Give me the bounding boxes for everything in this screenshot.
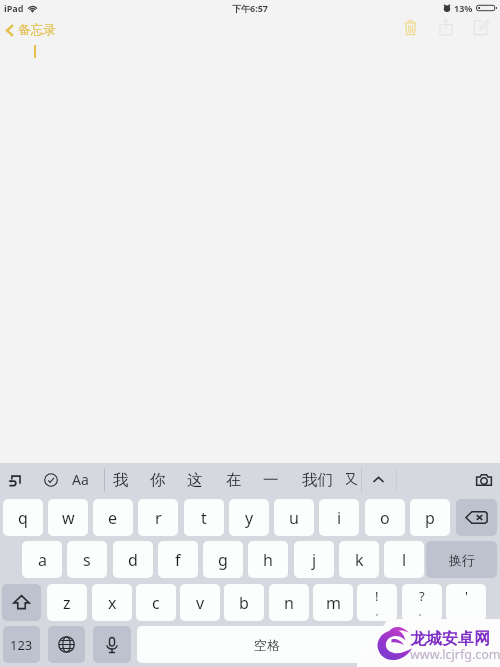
button[interactable]: Next keyboard [48, 626, 85, 663]
staticText: 一 [263, 470, 279, 490]
button[interactable]: l [384, 541, 424, 578]
staticText: h [263, 549, 273, 571]
button[interactable]: w [48, 499, 88, 536]
staticText: p [425, 507, 435, 529]
staticText: o [380, 507, 390, 529]
button[interactable]: Collapse candidates [368, 463, 388, 496]
button[interactable]: 我们 [300, 463, 334, 496]
staticText: 空格 [254, 637, 280, 653]
button[interactable]: z [47, 584, 87, 621]
button[interactable]: o [365, 499, 405, 536]
button[interactable]: j [294, 541, 334, 578]
staticText: ' [465, 587, 468, 605]
staticText: 13% [454, 2, 473, 14]
button[interactable]: e [93, 499, 133, 536]
staticText: ? [419, 587, 425, 605]
staticText: iPad [4, 2, 24, 14]
button[interactable]: a [22, 541, 62, 578]
button[interactable]: t [184, 499, 224, 536]
staticText: c [152, 592, 160, 614]
staticText: 换行 [449, 552, 475, 568]
staticText: f [175, 549, 181, 571]
button[interactable]: Aa [68, 463, 92, 496]
staticText: 这 [187, 470, 203, 490]
staticText: s [83, 549, 91, 571]
staticText: e [108, 507, 118, 529]
button[interactable]: ? [402, 584, 442, 621]
button[interactable]: 我 [110, 463, 132, 496]
button[interactable]: 在 [223, 463, 245, 496]
staticText: x [108, 592, 117, 614]
button[interactable]: Share [428, 12, 463, 42]
staticText: z [63, 592, 71, 614]
button[interactable]: Checklist [39, 463, 63, 496]
button[interactable]: 这 [184, 463, 206, 496]
staticText: 。 [418, 606, 427, 617]
staticText: d [128, 549, 138, 571]
button[interactable]: p [410, 499, 450, 536]
staticText: 在 [226, 470, 242, 490]
staticText: j [312, 549, 317, 571]
button[interactable]: g [203, 541, 243, 578]
button[interactable]: 一 [260, 463, 282, 496]
button[interactable]: q [3, 499, 43, 536]
staticText: 备忘录 [18, 22, 56, 38]
staticText: t [201, 507, 207, 529]
button[interactable]: d [113, 541, 153, 578]
button[interactable]: 又 [346, 463, 361, 496]
button[interactable]: v [180, 584, 220, 621]
staticText: 我 [113, 470, 129, 490]
button[interactable]: Undo [3, 463, 27, 496]
staticText: u [289, 507, 299, 529]
staticText: y [245, 507, 254, 529]
staticText: Aa [72, 470, 89, 489]
staticText: 123 [10, 636, 33, 654]
button[interactable]: k [339, 541, 379, 578]
button[interactable]: 备忘录 [5, 22, 56, 38]
button[interactable]: x [92, 584, 132, 621]
button[interactable]: Delete note [393, 12, 428, 42]
button[interactable]: i [319, 499, 359, 536]
button[interactable]: m [313, 584, 353, 621]
staticText: 下午6:57 [232, 2, 268, 14]
staticText: 龙城安卓网 [410, 629, 490, 649]
staticText: a [38, 549, 47, 571]
button[interactable]: h [248, 541, 288, 578]
button[interactable]: 123 [3, 626, 40, 663]
button[interactable]: Backspace [456, 499, 497, 536]
staticText: www.lcjrfg.com [410, 646, 500, 663]
staticText: 又 [346, 471, 358, 489]
button[interactable]: u [274, 499, 314, 536]
staticText: l [402, 549, 407, 571]
button[interactable]: c [136, 584, 176, 621]
staticText: ! [375, 587, 379, 605]
staticText: n [284, 592, 294, 614]
button[interactable]: s [67, 541, 107, 578]
button[interactable]: ' [446, 584, 486, 621]
button[interactable]: n [269, 584, 309, 621]
button[interactable]: Shift [2, 584, 41, 621]
button[interactable]: New note [463, 12, 498, 42]
button[interactable]: 换行 [426, 541, 497, 578]
staticText: 我们 [302, 470, 333, 490]
staticText: k [355, 549, 364, 571]
button[interactable]: 空格 [137, 626, 396, 663]
button[interactable]: f [158, 541, 198, 578]
staticText: b [239, 592, 249, 614]
staticText: w [62, 507, 75, 529]
button[interactable]: Camera [470, 463, 498, 496]
button[interactable]: Dictation [93, 626, 131, 663]
button[interactable]: ! [357, 584, 397, 621]
button[interactable]: b [224, 584, 264, 621]
staticText: m [326, 592, 341, 614]
staticText: q [18, 507, 28, 529]
staticText: g [218, 549, 228, 571]
button[interactable]: 你 [147, 463, 169, 496]
staticText: i [337, 507, 342, 529]
staticText: 你 [150, 470, 166, 490]
staticText: , [376, 605, 379, 617]
staticText: r [155, 507, 162, 529]
staticText: v [196, 592, 205, 614]
button[interactable]: r [138, 499, 178, 536]
button[interactable]: y [229, 499, 269, 536]
